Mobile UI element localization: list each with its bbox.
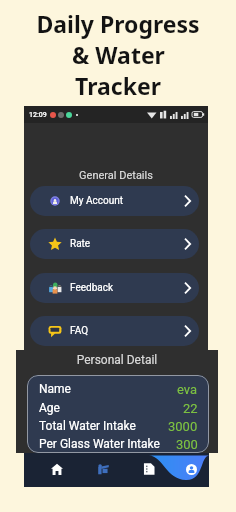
staticText: Per Glass Water Intake <box>39 437 160 451</box>
staticText: 300 <box>176 437 198 452</box>
staticText: My Account <box>70 195 123 207</box>
button[interactable]: Feedback <box>30 273 199 303</box>
staticText: Feedback <box>70 282 114 294</box>
staticText: Total Water Intake <box>39 419 136 433</box>
button[interactable]: Report <box>128 453 170 487</box>
staticText: Tracker <box>75 70 161 101</box>
button[interactable]: Water intake <box>82 453 124 487</box>
staticText: General Details <box>24 169 208 182</box>
staticText: & Water <box>72 39 165 70</box>
staticText: eva <box>177 382 198 397</box>
button[interactable]: FAQ <box>30 316 199 346</box>
staticText: 22 <box>183 401 198 416</box>
button[interactable]: Profile <box>170 453 212 487</box>
button[interactable]: Rate <box>30 229 199 259</box>
button[interactable]: Home <box>36 453 78 487</box>
staticText: Daily Progress <box>36 8 200 39</box>
staticText: Personal Detail <box>16 353 218 367</box>
staticText: 12:09 <box>29 111 47 119</box>
staticText: Age <box>39 401 60 415</box>
staticText: 3000 <box>168 419 198 434</box>
staticText: Rate <box>70 238 91 250</box>
button[interactable]: My Account <box>30 186 199 216</box>
staticText: FAQ <box>70 325 89 337</box>
staticText: Name <box>39 382 71 396</box>
